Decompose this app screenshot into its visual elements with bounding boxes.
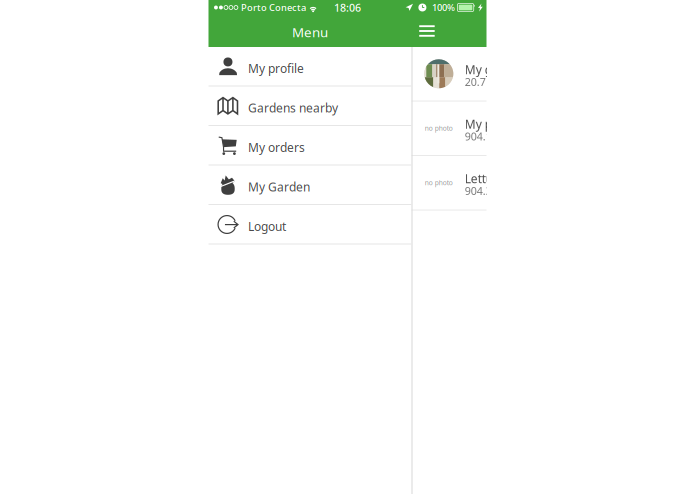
staticText: 904.3 km xyxy=(465,184,511,198)
staticText: Lettuce farm xyxy=(465,171,536,187)
button[interactable]: Gardens nearby xyxy=(208,86,411,126)
staticText: no photo xyxy=(425,124,453,133)
button[interactable]: no photo xyxy=(411,156,611,210)
staticText: My garden xyxy=(465,62,525,78)
button[interactable]: Close menu xyxy=(411,15,486,47)
staticText: Gardens nearby xyxy=(248,100,338,116)
staticText: 100% xyxy=(432,1,455,14)
staticText: My profile xyxy=(248,60,304,76)
button[interactable]: no photo xyxy=(411,101,611,156)
staticText: 20.7 km xyxy=(465,75,505,89)
staticText: 904.1 km xyxy=(465,129,511,143)
staticText: My Garden xyxy=(248,179,310,195)
staticText: My orders xyxy=(248,139,305,155)
staticText: Porto Conecta xyxy=(241,1,306,14)
staticText: Logout xyxy=(248,218,286,234)
staticText: no photo xyxy=(425,178,453,187)
button[interactable]: My Garden xyxy=(208,165,411,205)
staticText: My place xyxy=(465,116,515,132)
staticText: Menu xyxy=(292,23,328,41)
button[interactable]: My orders xyxy=(208,126,411,165)
staticText: 18:06 xyxy=(334,0,361,15)
button[interactable]: Logout xyxy=(208,205,411,244)
button[interactable]: My garden xyxy=(411,47,611,101)
button[interactable]: My profile xyxy=(208,47,411,86)
